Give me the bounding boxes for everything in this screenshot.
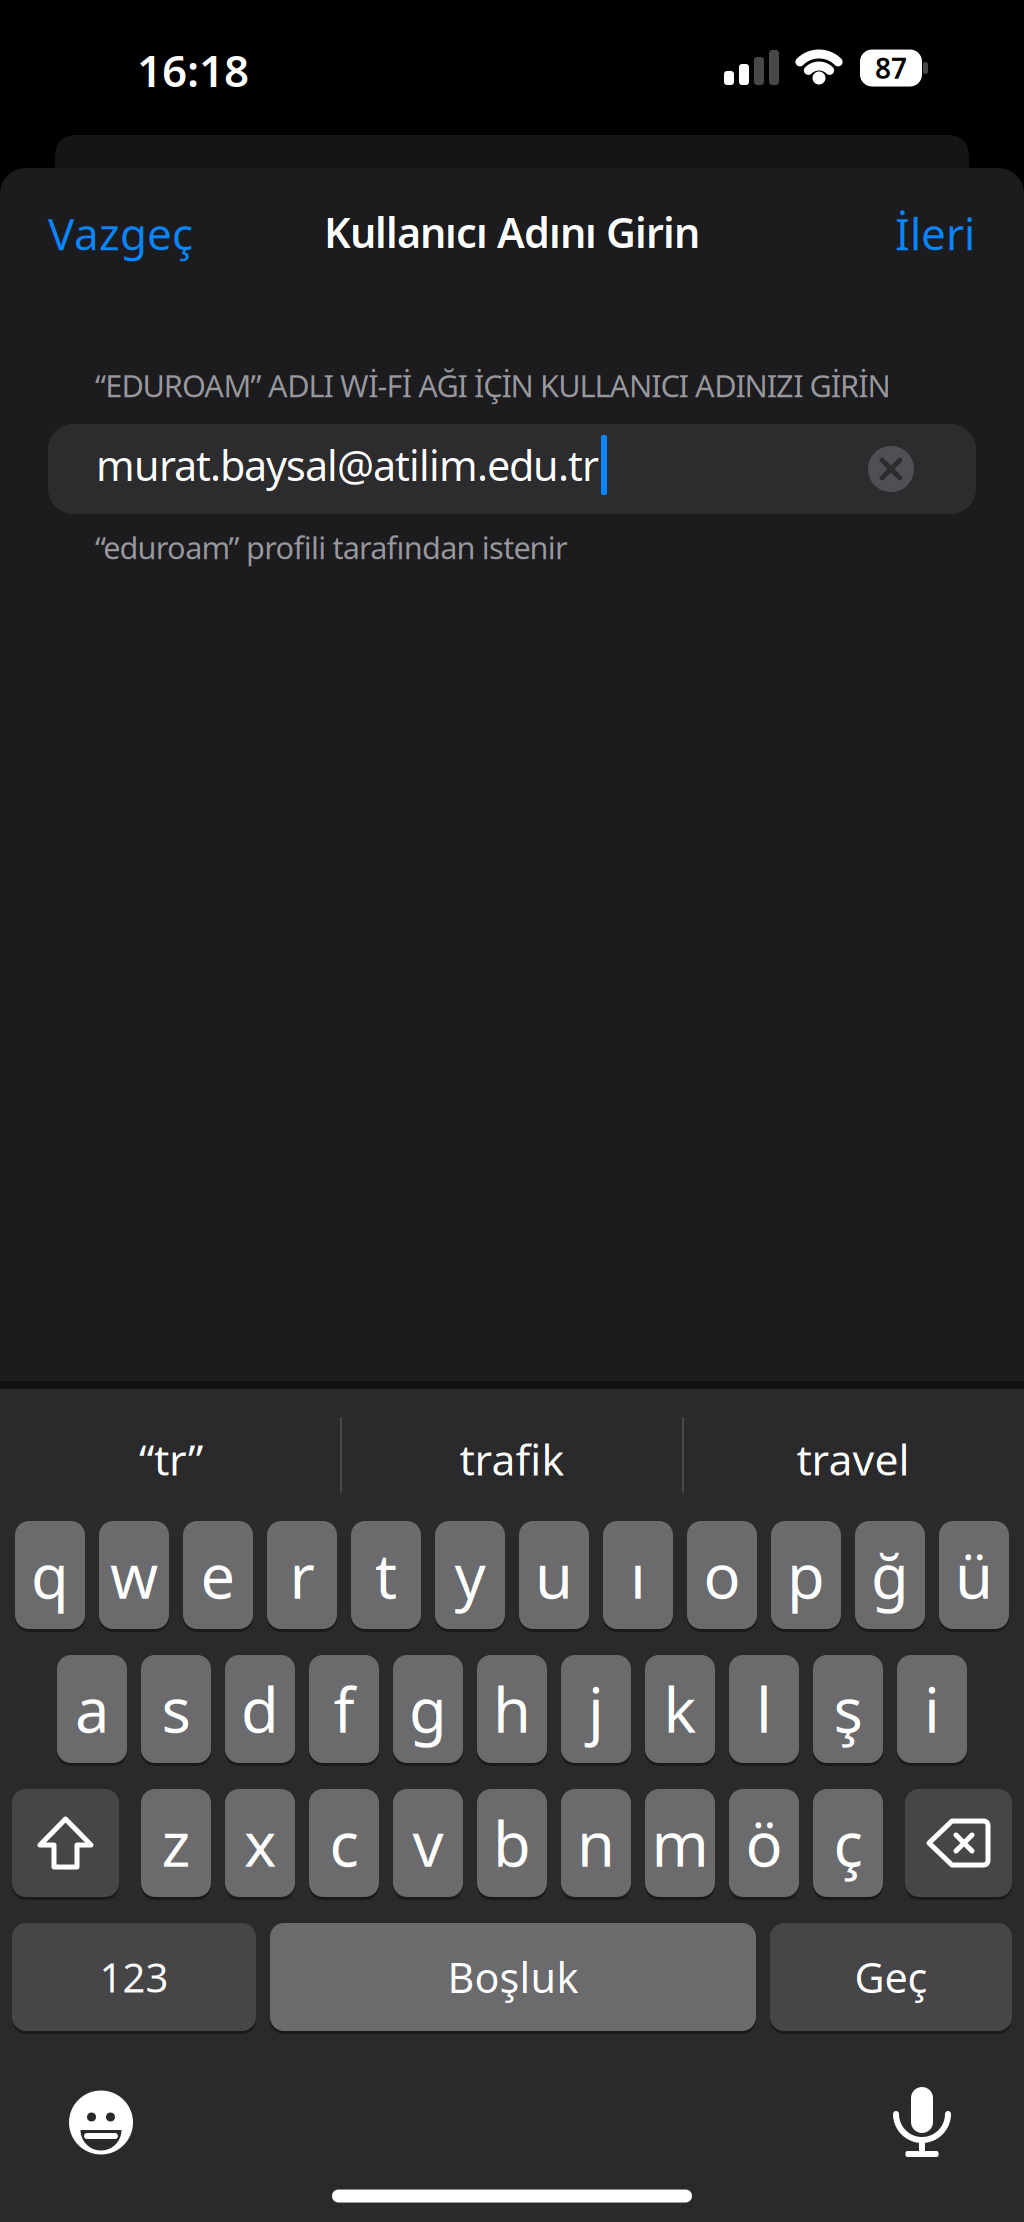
button[interactable]: Shift xyxy=(12,1789,119,1897)
staticText: ö xyxy=(745,1802,782,1884)
staticText: a xyxy=(75,1668,109,1750)
button[interactable]: j xyxy=(561,1655,631,1763)
button[interactable]: Boşluk xyxy=(270,1923,756,2031)
button[interactable]: Geç xyxy=(770,1923,1012,2031)
button[interactable]: u xyxy=(519,1521,589,1629)
staticText: 87 xyxy=(875,49,907,87)
button[interactable]: q xyxy=(15,1521,85,1629)
staticText: İleri xyxy=(895,204,975,262)
staticText: s xyxy=(161,1668,190,1750)
staticText: d xyxy=(241,1668,279,1750)
staticText: j xyxy=(588,1668,604,1750)
staticText: e xyxy=(200,1534,235,1616)
button[interactable]: Clear text xyxy=(868,446,914,492)
staticText: w xyxy=(110,1534,158,1616)
staticText: 123 xyxy=(99,1950,168,2003)
staticText: ç xyxy=(833,1802,862,1884)
button[interactable]: f xyxy=(309,1655,379,1763)
staticText: murat.baysal@atilim.edu.tr xyxy=(96,438,599,492)
button[interactable]: trafik xyxy=(344,1409,679,1509)
staticText: g xyxy=(409,1668,447,1750)
button[interactable]: p xyxy=(771,1521,841,1629)
staticText: ü xyxy=(955,1534,993,1616)
staticText: r xyxy=(289,1534,314,1616)
staticText: “tr” xyxy=(139,1431,203,1487)
staticText: h xyxy=(493,1668,531,1750)
button[interactable]: ü xyxy=(939,1521,1009,1629)
staticText: Vazgeç xyxy=(48,204,193,262)
staticText: travel xyxy=(796,1431,909,1487)
staticText: ı xyxy=(630,1534,646,1616)
staticText: c xyxy=(329,1802,358,1884)
staticText: q xyxy=(31,1534,69,1616)
button[interactable]: g xyxy=(393,1655,463,1763)
button[interactable]: o xyxy=(687,1521,757,1629)
button[interactable]: e xyxy=(183,1521,253,1629)
button[interactable]: n xyxy=(561,1789,631,1897)
staticText: ş xyxy=(833,1668,862,1750)
button[interactable]: 123 xyxy=(12,1923,256,2031)
button[interactable]: Dictation xyxy=(878,2075,968,2165)
button[interactable]: y xyxy=(435,1521,505,1629)
staticText: k xyxy=(663,1668,696,1750)
button[interactable]: h xyxy=(477,1655,547,1763)
button[interactable]: z xyxy=(141,1789,211,1897)
staticText: z xyxy=(161,1802,190,1884)
staticText: p xyxy=(787,1534,825,1616)
staticText: t xyxy=(375,1534,397,1616)
staticText: m xyxy=(651,1802,708,1884)
staticText: y xyxy=(454,1534,485,1616)
staticText: 16:18 xyxy=(137,41,249,99)
button[interactable]: d xyxy=(225,1655,295,1763)
button[interactable]: ö xyxy=(729,1789,799,1897)
button[interactable]: t xyxy=(351,1521,421,1629)
staticText: Boşluk xyxy=(447,1950,578,2004)
staticText: Geç xyxy=(854,1950,927,2004)
button[interactable]: k xyxy=(645,1655,715,1763)
button[interactable]: i xyxy=(897,1655,967,1763)
staticText: Kullanıcı Adını Girin xyxy=(324,205,700,259)
staticText: trafik xyxy=(459,1431,564,1487)
staticText: u xyxy=(535,1534,573,1616)
staticText: n xyxy=(577,1802,615,1884)
button[interactable]: x xyxy=(225,1789,295,1897)
staticText: “EDUROAM” ADLI Wİ-Fİ AĞI İÇİN KULLANICI … xyxy=(95,365,890,406)
staticText: i xyxy=(924,1668,940,1750)
button[interactable]: Vazgeç xyxy=(48,204,193,262)
staticText: l xyxy=(756,1668,772,1750)
button[interactable]: s xyxy=(141,1655,211,1763)
button[interactable]: b xyxy=(477,1789,547,1897)
button[interactable]: a xyxy=(57,1655,127,1763)
button[interactable]: Emoji xyxy=(55,2077,145,2167)
button[interactable]: ş xyxy=(813,1655,883,1763)
button[interactable]: m xyxy=(645,1789,715,1897)
button[interactable]: İleri xyxy=(895,204,975,262)
button[interactable]: c xyxy=(309,1789,379,1897)
staticText: b xyxy=(493,1802,531,1884)
staticText: v xyxy=(412,1802,443,1884)
button[interactable]: travel xyxy=(685,1409,1020,1509)
button[interactable]: ğ xyxy=(855,1521,925,1629)
button[interactable]: ı xyxy=(603,1521,673,1629)
button[interactable]: v xyxy=(393,1789,463,1897)
staticText: ğ xyxy=(871,1534,909,1616)
button[interactable]: ç xyxy=(813,1789,883,1897)
button[interactable]: Delete xyxy=(905,1789,1012,1897)
staticText: x xyxy=(244,1802,276,1884)
staticText: o xyxy=(703,1534,740,1616)
button[interactable]: l xyxy=(729,1655,799,1763)
staticText: “eduroam” profili tarafından istenir xyxy=(95,527,568,568)
button[interactable]: “tr” xyxy=(3,1409,338,1509)
staticText: f xyxy=(333,1668,354,1750)
button[interactable]: w xyxy=(99,1521,169,1629)
button[interactable]: r xyxy=(267,1521,337,1629)
